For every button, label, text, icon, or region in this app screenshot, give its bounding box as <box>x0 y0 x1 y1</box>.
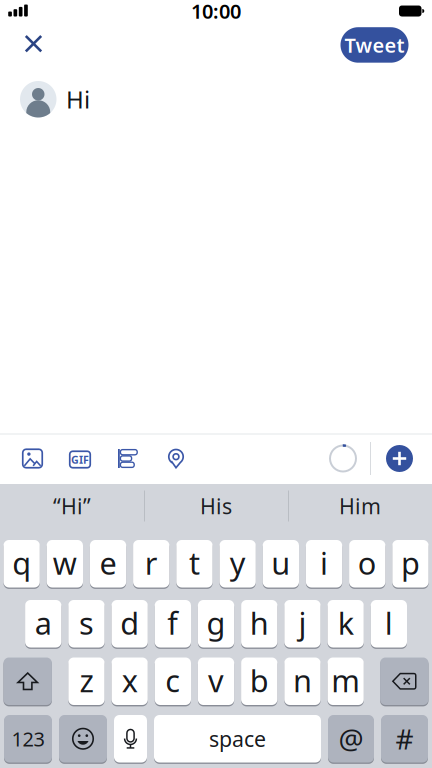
staticText: h <box>250 602 269 643</box>
staticText: # <box>395 720 413 757</box>
staticText: Tweet <box>344 32 404 58</box>
staticText: His <box>200 492 232 520</box>
staticText: 10:00 <box>191 0 241 24</box>
button[interactable]: u <box>263 540 299 587</box>
button[interactable]: p <box>392 540 429 587</box>
button[interactable] <box>114 715 147 762</box>
button[interactable]: g <box>198 600 234 647</box>
staticText: u <box>271 542 290 583</box>
staticText: q <box>12 542 31 583</box>
button[interactable] <box>21 32 45 56</box>
button[interactable]: Him <box>288 484 432 528</box>
staticText: o <box>358 542 377 583</box>
button[interactable]: r <box>133 540 169 587</box>
button[interactable]: His <box>144 484 288 528</box>
button[interactable] <box>3 657 52 705</box>
button[interactable]: j <box>284 600 321 647</box>
staticText: f <box>167 602 178 643</box>
button[interactable]: i <box>306 540 342 587</box>
staticText: y <box>230 542 246 583</box>
button[interactable]: space <box>154 715 321 762</box>
staticText: b <box>250 660 269 701</box>
button[interactable] <box>166 448 186 468</box>
button[interactable] <box>386 445 413 472</box>
button[interactable] <box>59 715 107 762</box>
button[interactable]: w <box>47 540 83 587</box>
button[interactable]: “Hi” <box>0 484 144 528</box>
button[interactable] <box>118 449 138 468</box>
staticText: e <box>100 542 117 583</box>
button[interactable] <box>22 449 42 468</box>
staticText: GIF <box>71 452 89 467</box>
button[interactable]: e <box>90 540 126 587</box>
button[interactable]: # <box>381 715 428 762</box>
staticText: “Hi” <box>53 492 91 520</box>
button[interactable]: a <box>25 600 61 647</box>
staticText: d <box>120 602 139 643</box>
button[interactable]: k <box>327 600 364 647</box>
staticText: a <box>35 602 52 643</box>
staticText: c <box>165 660 180 701</box>
staticText: k <box>338 602 354 643</box>
staticText: i <box>320 542 328 583</box>
button[interactable]: GIF <box>69 450 90 469</box>
staticText: n <box>293 660 312 701</box>
staticText: w <box>53 542 77 583</box>
staticText: Him <box>339 492 381 520</box>
button[interactable] <box>380 657 428 705</box>
button[interactable]: o <box>349 540 385 587</box>
staticText: z <box>79 660 93 701</box>
staticText: g <box>207 602 226 643</box>
staticText: l <box>385 602 393 643</box>
button[interactable]: n <box>284 657 321 705</box>
button[interactable]: l <box>371 600 407 647</box>
staticText: s <box>79 602 94 643</box>
staticText: Hi <box>66 83 90 115</box>
button[interactable]: s <box>68 600 105 647</box>
button[interactable]: q <box>3 540 40 587</box>
staticText: @ <box>338 720 363 757</box>
button[interactable]: 123 <box>4 715 52 762</box>
staticText: 123 <box>11 725 44 752</box>
button[interactable]: h <box>241 600 277 647</box>
button[interactable]: @ <box>328 715 374 762</box>
staticText: j <box>298 602 306 643</box>
button[interactable]: z <box>68 657 105 705</box>
button[interactable]: m <box>327 657 364 705</box>
button[interactable]: c <box>155 657 191 705</box>
staticText: x <box>122 660 138 701</box>
button[interactable]: b <box>241 657 277 705</box>
button[interactable]: d <box>111 600 148 647</box>
button[interactable]: t <box>176 540 213 587</box>
staticText: t <box>189 542 200 583</box>
staticText: v <box>208 660 224 701</box>
button[interactable]: Tweet <box>340 27 408 63</box>
button[interactable]: v <box>198 657 234 705</box>
button[interactable]: y <box>219 540 256 587</box>
staticText: p <box>401 542 420 583</box>
staticText: m <box>331 660 360 701</box>
button[interactable]: f <box>155 600 191 647</box>
button[interactable]: x <box>111 657 148 705</box>
staticText: space <box>209 725 266 753</box>
staticText: r <box>145 542 158 583</box>
